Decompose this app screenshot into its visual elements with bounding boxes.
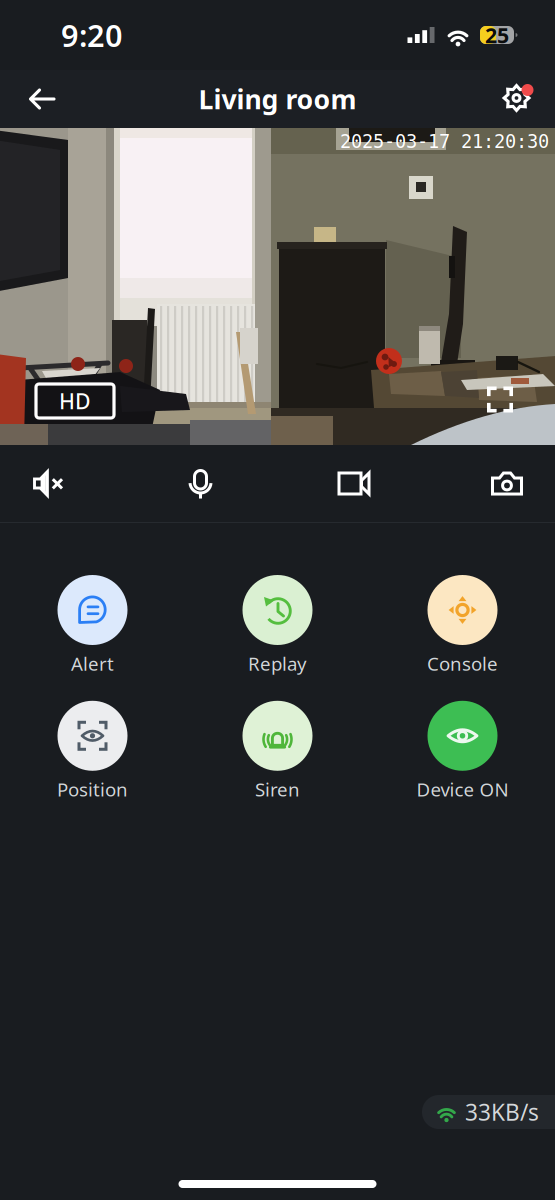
button[interactable]: Position (0, 701, 185, 802)
button[interactable]: Replay (185, 575, 370, 676)
staticText: Console (427, 651, 498, 676)
button[interactable]: Snapshot (477, 445, 537, 522)
staticText: HD (59, 387, 91, 415)
staticText: Device ON (416, 777, 508, 802)
button[interactable]: Console (370, 575, 555, 676)
button[interactable]: Alert (0, 575, 185, 676)
staticText: 9:20 (61, 15, 123, 55)
staticText: Replay (248, 651, 307, 676)
button[interactable]: Back (0, 74, 68, 124)
staticText: Siren (255, 777, 300, 802)
button[interactable]: Record video (324, 445, 384, 522)
button[interactable]: Device ON (370, 701, 555, 802)
button[interactable]: Talk (171, 445, 231, 522)
button[interactable]: Mute (18, 445, 78, 522)
staticText: 33KB/s (465, 1097, 539, 1127)
button[interactable]: Settings (493, 74, 555, 124)
staticText: 2025-03-17 21:20:30 (340, 131, 549, 152)
staticText: Living room (198, 81, 356, 117)
button[interactable]: Full screen (487, 386, 555, 442)
staticText: Position (57, 777, 128, 802)
staticText: Alert (71, 651, 114, 676)
staticText: 25 (485, 21, 509, 49)
button[interactable]: HD (36, 384, 114, 418)
button[interactable]: Siren (185, 701, 370, 802)
